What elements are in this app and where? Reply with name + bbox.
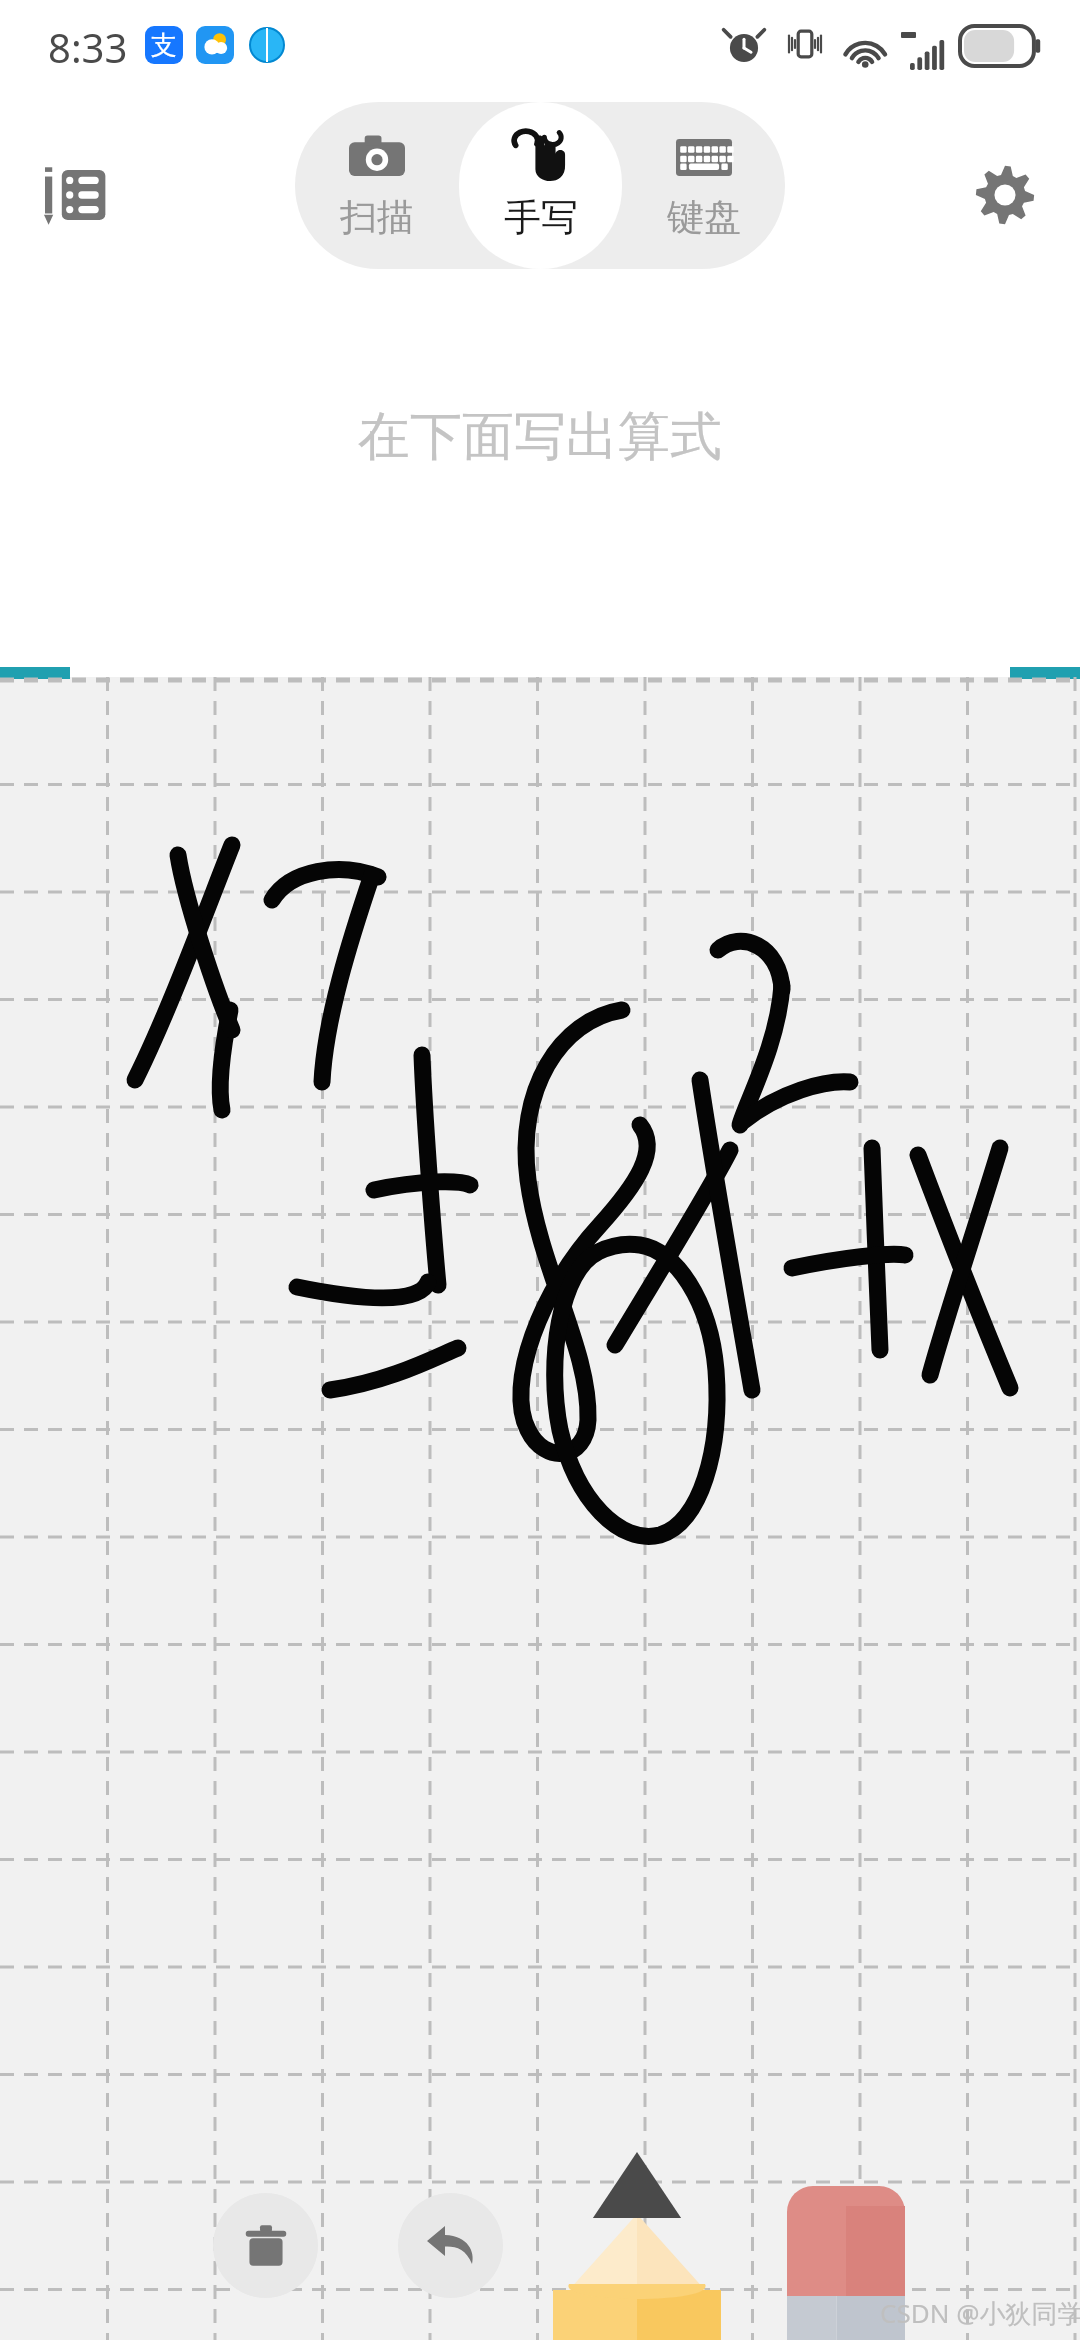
button[interactable]: 手写 (459, 102, 622, 269)
staticText: 8:33 (48, 20, 128, 74)
button[interactable]: Settings (950, 140, 1060, 250)
staticText: 手写 (504, 194, 578, 241)
staticText: CSDN @小狄同学呀 (880, 2295, 1080, 2331)
button[interactable]: 键盘 (622, 102, 785, 269)
staticText: 键盘 (667, 194, 741, 241)
button[interactable]: History (20, 140, 130, 250)
staticText: 扫描 (340, 194, 414, 241)
button[interactable]: 扫描 (295, 102, 459, 269)
staticText: 在下面写出算式 (358, 404, 722, 470)
staticText: 支 (151, 29, 177, 62)
button[interactable]: Clear (213, 2193, 318, 2298)
button[interactable]: Undo (398, 2193, 503, 2298)
